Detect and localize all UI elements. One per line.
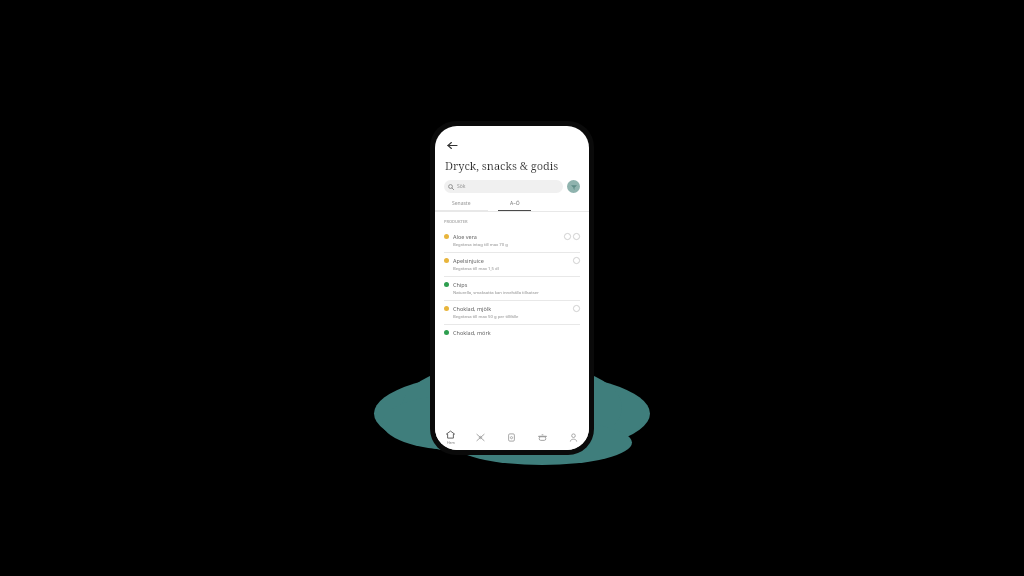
- staticText: Naturella, smaksatta kan innehålla tills…: [453, 290, 539, 296]
- staticText: Sök: [457, 183, 466, 190]
- staticText: PRODUKTER: [444, 219, 468, 224]
- staticText: Begränsa intag till max 70 g: [453, 242, 508, 248]
- staticText: Dryck, snacks & godis: [445, 158, 559, 173]
- button[interactable]: Chips: [435, 277, 589, 300]
- button[interactable]: Recept: [527, 424, 558, 450]
- button[interactable]: Hem: [435, 424, 465, 450]
- button[interactable]: Senaste: [435, 200, 488, 211]
- button[interactable]: Filter: [567, 180, 580, 193]
- staticText: A–Ö: [510, 200, 520, 207]
- button[interactable]: A–Ö: [488, 200, 541, 211]
- staticText: Senaste: [452, 200, 471, 207]
- button[interactable]: Aloe vera: [435, 229, 589, 252]
- button[interactable]: Choklad, mörk: [435, 325, 589, 340]
- button[interactable]: Sök: [444, 180, 563, 193]
- staticText: Hem: [447, 440, 455, 445]
- button[interactable]: Apelsinjuice: [435, 253, 589, 276]
- button[interactable]: Lista: [496, 424, 527, 450]
- staticText: Apelsinjuice: [453, 257, 484, 264]
- button[interactable]: Profil: [558, 424, 589, 450]
- staticText: Begränsa till max 50 g per tillfälle: [453, 314, 519, 320]
- button[interactable]: Back: [443, 136, 461, 154]
- staticText: Begränsa till max 1,5 dl: [453, 266, 499, 272]
- staticText: Choklad, mjölk: [453, 305, 492, 312]
- button[interactable]: Choklad, mjölk: [435, 301, 589, 324]
- staticText: Aloe vera: [453, 233, 477, 240]
- staticText: Choklad, mörk: [453, 329, 491, 336]
- button[interactable]: Verktyg: [465, 424, 496, 450]
- staticText: Chips: [453, 281, 468, 288]
